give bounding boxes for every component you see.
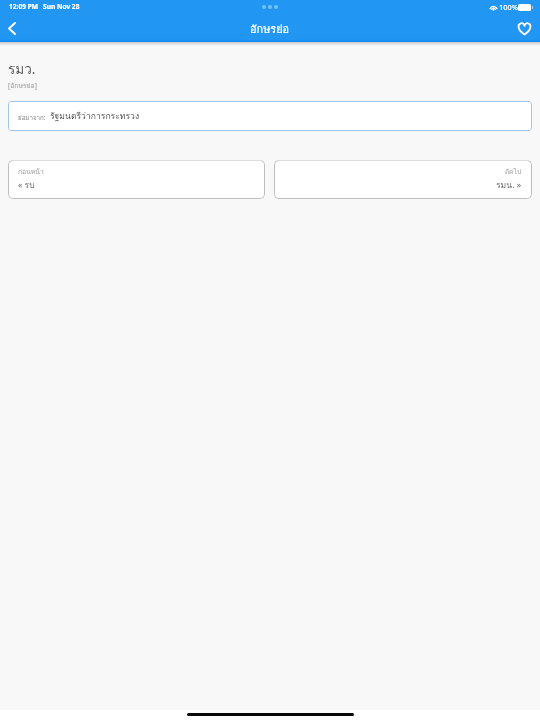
button[interactable]: Back bbox=[0, 14, 24, 42]
staticText: « รบ bbox=[18, 178, 35, 192]
staticText: รมน. » bbox=[496, 178, 522, 192]
button[interactable]: ถัดไป bbox=[274, 160, 532, 199]
staticText: [อักษรย่อ] bbox=[8, 80, 37, 91]
button[interactable]: ย่อมาจาก: bbox=[8, 101, 532, 131]
button[interactable]: ก่อนหน้า bbox=[8, 160, 265, 199]
staticText: รมว. bbox=[8, 58, 36, 79]
staticText: 12:09 PM Sun Nov 28 bbox=[9, 2, 80, 11]
staticText: อักษรย่อ bbox=[250, 20, 290, 37]
staticText: รัฐมนตรีว่าการกระทรวง bbox=[50, 109, 140, 123]
staticText: ก่อนหน้า bbox=[18, 166, 44, 177]
button[interactable]: Favorite bbox=[509, 14, 540, 42]
staticText: ย่อมาจาก: bbox=[18, 113, 46, 123]
staticText: 100% bbox=[499, 2, 518, 12]
staticText: ถัดไป bbox=[505, 166, 522, 177]
